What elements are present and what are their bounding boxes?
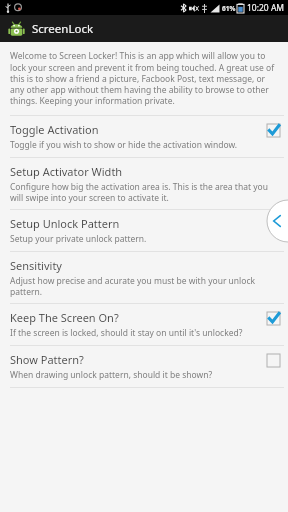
staticText: ScreenLock: [32, 21, 94, 37]
staticText: Welcome to Screen Locker! This is an app…: [10, 50, 276, 107]
button[interactable]: Show Pattern?: [0, 346, 288, 387]
staticText: Setup Unlock Pattern: [10, 216, 120, 231]
staticText: Adjust how precise and acurate you must …: [10, 275, 280, 297]
button[interactable]: Sensitivity: [0, 252, 288, 303]
button[interactable]: Checked: [267, 312, 280, 325]
button[interactable]: ScreenLock app icon: [8, 20, 25, 37]
button[interactable]: Toggle Activation: [0, 116, 288, 157]
staticText: Toggle if you wish to show or hide the a…: [10, 139, 238, 151]
staticText: Configure how big the activation area is…: [10, 181, 280, 203]
button[interactable]: Setup Unlock Pattern: [0, 210, 288, 251]
staticText: Sensitivity: [10, 258, 62, 273]
staticText: Show Pattern?: [10, 352, 84, 367]
button[interactable]: Checked: [267, 124, 280, 137]
staticText: Setup Activator Width: [10, 164, 123, 179]
staticText: 10:20 AM: [247, 2, 285, 14]
button[interactable]: Open navigation drawer: [271, 200, 288, 242]
staticText: Setup your private unlock pattern.: [10, 233, 147, 245]
staticText: If the screen is locked, should it stay …: [10, 327, 243, 339]
staticText: Toggle Activation: [10, 122, 99, 137]
staticText: When drawing unlock pattern, should it b…: [10, 369, 213, 381]
button[interactable]: Unchecked: [267, 354, 280, 367]
staticText: 61%: [222, 4, 236, 13]
staticText: Keep The Screen On?: [10, 310, 119, 325]
button[interactable]: Setup Activator Width: [0, 158, 288, 209]
button[interactable]: Keep The Screen On?: [0, 304, 288, 345]
